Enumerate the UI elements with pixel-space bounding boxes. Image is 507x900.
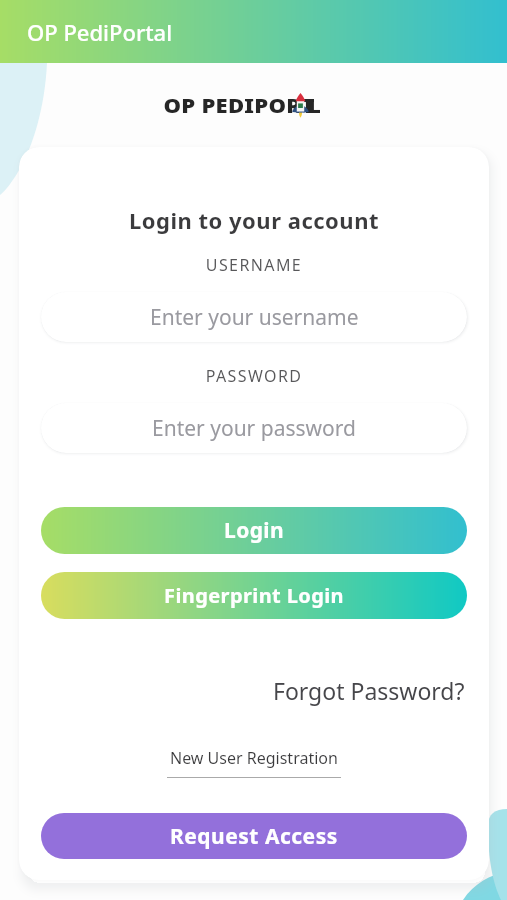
button[interactable]: Request Access xyxy=(41,813,467,859)
staticText: OP PEDIPORT xyxy=(163,93,315,119)
staticText: New User Registration xyxy=(170,747,338,769)
staticText: USERNAME xyxy=(19,254,489,276)
staticText: PASSWORD xyxy=(19,365,489,387)
button[interactable]: Enter your username xyxy=(41,292,467,342)
button[interactable]: Forgot Password? xyxy=(273,675,465,706)
staticText: Fingerprint Login xyxy=(164,582,345,609)
staticText: Enter your username xyxy=(150,303,359,332)
button[interactable]: Enter your password xyxy=(41,403,467,453)
staticText: Login xyxy=(224,516,285,545)
staticText: Enter your password xyxy=(152,414,356,443)
staticText: L xyxy=(308,93,322,119)
staticText: OP PediPortal xyxy=(27,17,173,47)
button[interactable]: New User Registration xyxy=(167,747,341,778)
staticText: Request Access xyxy=(170,822,338,851)
staticText: Login to your account xyxy=(19,205,489,235)
button[interactable]: Fingerprint Login xyxy=(41,572,467,619)
button[interactable]: Login xyxy=(41,507,467,554)
